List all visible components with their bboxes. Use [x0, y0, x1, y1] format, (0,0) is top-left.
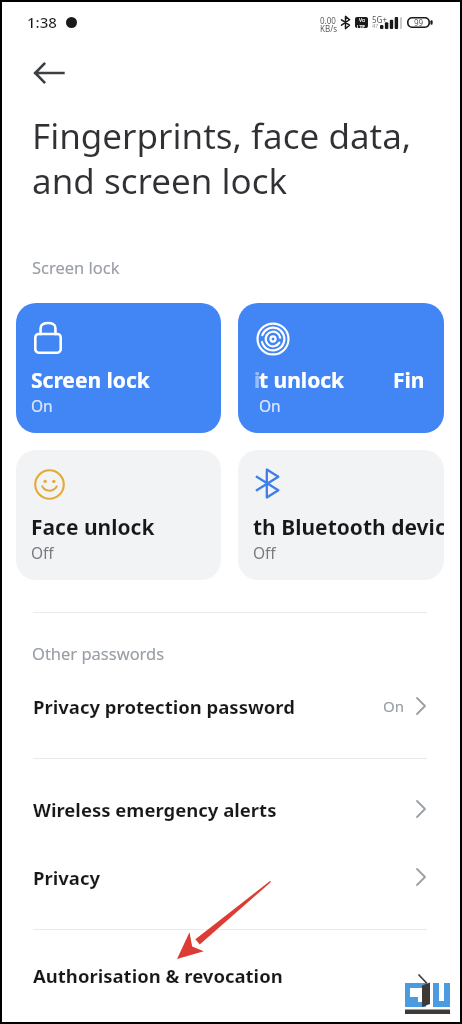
- button[interactable]: Back: [25, 49, 73, 97]
- staticText: Fin: [393, 366, 425, 395]
- staticText: On: [259, 395, 281, 416]
- staticText: Other passwords: [32, 642, 165, 664]
- staticText: KB/s: [320, 23, 337, 34]
- staticText: 4?: [372, 22, 379, 30]
- button[interactable]: Face unlock: [16, 450, 221, 580]
- button[interactable]: Screen lock: [16, 303, 221, 433]
- staticText: LTE: [357, 24, 366, 28]
- button[interactable]: Wireless emergency alerts: [0, 790, 462, 828]
- staticText: Off: [253, 542, 276, 563]
- staticText: 1:38: [27, 12, 57, 32]
- staticText: On: [383, 696, 404, 716]
- staticText: Privacy: [33, 865, 101, 890]
- staticText: t unlock: [259, 366, 345, 395]
- button[interactable]: Privacy: [0, 858, 462, 896]
- staticText: Fingerprints, face data, and screen lock: [32, 112, 412, 204]
- staticText: 99: [414, 17, 424, 28]
- staticText: th Bluetooth devic: [253, 513, 444, 542]
- staticText: Authorisation & revocation: [33, 963, 283, 988]
- staticText: Screen lock: [31, 366, 150, 395]
- staticText: Screen lock: [32, 256, 120, 278]
- button[interactable]: th Bluetooth devic: [238, 450, 444, 580]
- staticText: Vo: [359, 17, 365, 24]
- staticText: 5G+: [372, 14, 387, 25]
- staticText: Off: [31, 542, 54, 563]
- staticText: 0.00: [320, 15, 336, 26]
- staticText: On: [31, 395, 53, 416]
- button[interactable]: Privacy protection password: [0, 687, 462, 725]
- button[interactable]: t unlock: [238, 303, 444, 433]
- staticText: i: [254, 366, 261, 395]
- button[interactable]: Authorisation & revocation: [0, 956, 462, 994]
- staticText: Wireless emergency alerts: [33, 797, 277, 822]
- staticText: Face unlock: [31, 513, 155, 542]
- staticText: Privacy protection password: [33, 694, 295, 719]
